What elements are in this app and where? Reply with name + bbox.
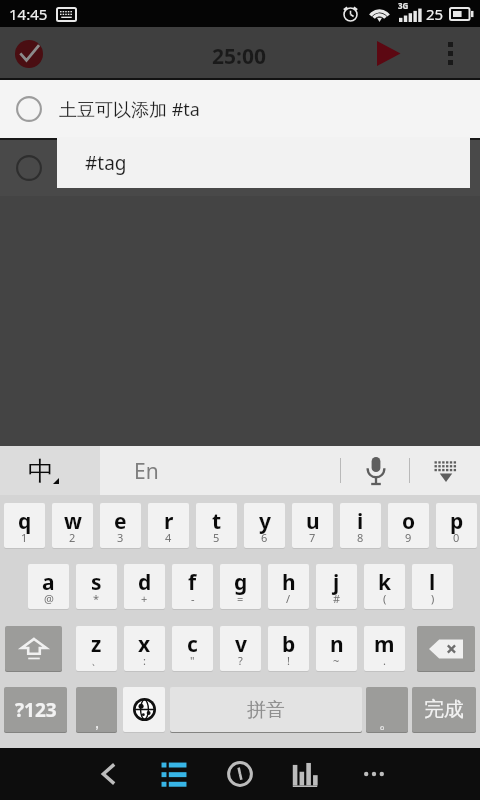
staticText: l <box>429 568 436 597</box>
button[interactable]: Hide keyboard <box>414 446 478 495</box>
button[interactable]: o <box>388 503 429 548</box>
staticText: * <box>93 591 100 606</box>
staticText: k <box>378 568 392 597</box>
button[interactable]: Change language <box>123 687 165 732</box>
staticText: - <box>191 591 195 606</box>
button[interactable]: 。 <box>366 687 408 732</box>
button[interactable]: Shift <box>5 626 62 671</box>
staticText: 7 <box>309 530 316 545</box>
staticText: " <box>190 653 195 668</box>
button[interactable]: More options <box>430 27 470 80</box>
button[interactable]: i <box>340 503 381 548</box>
button[interactable]: v <box>220 626 261 671</box>
button[interactable]: 土豆可以添加 #ta <box>0 80 480 138</box>
staticText: v <box>235 630 247 659</box>
staticText: ! <box>287 653 290 668</box>
staticText: i <box>357 507 364 536</box>
button[interactable]: #tag <box>57 137 470 188</box>
button[interactable]: a <box>28 564 69 609</box>
staticText: 拼音 <box>247 698 285 722</box>
button[interactable] <box>0 140 480 196</box>
button[interactable]: q <box>4 503 45 548</box>
button[interactable]: ?123 <box>4 687 67 732</box>
button[interactable]: ， <box>76 687 117 732</box>
button[interactable]: Backspace <box>417 626 475 671</box>
button[interactable]: t <box>196 503 237 548</box>
button[interactable]: 拼音 <box>170 687 362 732</box>
button[interactable]: Stats <box>272 748 338 800</box>
button[interactable]: k <box>364 564 405 609</box>
button[interactable]: App logo <box>11 27 47 80</box>
button[interactable]: p <box>436 503 477 548</box>
staticText: 4 <box>165 530 172 545</box>
button[interactable]: c <box>172 626 213 671</box>
staticText: m <box>374 630 395 659</box>
button[interactable]: u <box>292 503 333 548</box>
button[interactable]: m <box>364 626 405 671</box>
staticText: # <box>333 591 341 606</box>
staticText: 3 <box>117 530 124 545</box>
staticText: 、 <box>91 654 102 668</box>
button[interactable]: l <box>412 564 453 609</box>
staticText: 3G <box>398 0 409 11</box>
staticText: s <box>91 568 102 597</box>
button[interactable]: d <box>124 564 165 609</box>
staticText: d <box>138 568 152 597</box>
staticText: 9 <box>405 530 412 545</box>
staticText: 25:00 <box>212 42 266 71</box>
staticText: @ <box>44 591 54 606</box>
button[interactable]: e <box>100 503 141 548</box>
staticText: = <box>237 591 244 606</box>
staticText: j <box>333 568 340 597</box>
staticText: / <box>286 591 291 606</box>
button[interactable]: h <box>268 564 309 609</box>
staticText: e <box>114 507 127 536</box>
staticText: En <box>134 457 159 486</box>
staticText: h <box>282 568 296 597</box>
button[interactable]: 中 <box>0 446 100 495</box>
button[interactable]: y <box>244 503 285 548</box>
staticText: w <box>64 507 82 536</box>
staticText: f <box>188 568 197 597</box>
staticText: ? <box>238 653 243 668</box>
button[interactable]: b <box>268 626 309 671</box>
staticText: . <box>383 653 386 668</box>
staticText: : <box>143 653 146 668</box>
staticText: 25 <box>426 4 444 24</box>
button[interactable]: More <box>341 748 407 800</box>
button[interactable]: n <box>316 626 357 671</box>
button[interactable]: Voice input <box>344 446 408 495</box>
button[interactable]: Back <box>76 748 142 800</box>
staticText: q <box>18 507 32 536</box>
button[interactable]: 完成 <box>412 687 476 732</box>
button[interactable]: Tasks <box>141 748 207 800</box>
staticText: r <box>164 507 174 536</box>
staticText: ， <box>89 713 105 732</box>
staticText: y <box>259 507 271 536</box>
staticText: 完成 <box>424 697 464 722</box>
button[interactable]: Start timer <box>360 27 416 80</box>
staticText: #tag <box>85 150 127 176</box>
button[interactable]: Timer <box>207 748 273 800</box>
staticText: + <box>141 591 148 606</box>
button[interactable]: f <box>172 564 213 609</box>
staticText: g <box>234 568 248 597</box>
staticText: 中 <box>28 455 54 488</box>
staticText: t <box>212 507 222 536</box>
staticText: 5 <box>213 530 220 545</box>
button[interactable]: g <box>220 564 261 609</box>
staticText: c <box>187 630 198 659</box>
staticText: ) <box>431 591 435 606</box>
staticText: p <box>450 507 464 536</box>
button[interactable]: s <box>76 564 117 609</box>
button[interactable]: w <box>52 503 93 548</box>
button[interactable]: j <box>316 564 357 609</box>
button[interactable]: x <box>124 626 165 671</box>
staticText: 土豆可以添加 #ta <box>59 97 200 122</box>
staticText: ( <box>383 591 387 606</box>
button[interactable]: r <box>148 503 189 548</box>
staticText: x <box>138 630 151 659</box>
staticText: b <box>282 630 296 659</box>
button[interactable]: z <box>76 626 117 671</box>
staticText: n <box>330 630 344 659</box>
